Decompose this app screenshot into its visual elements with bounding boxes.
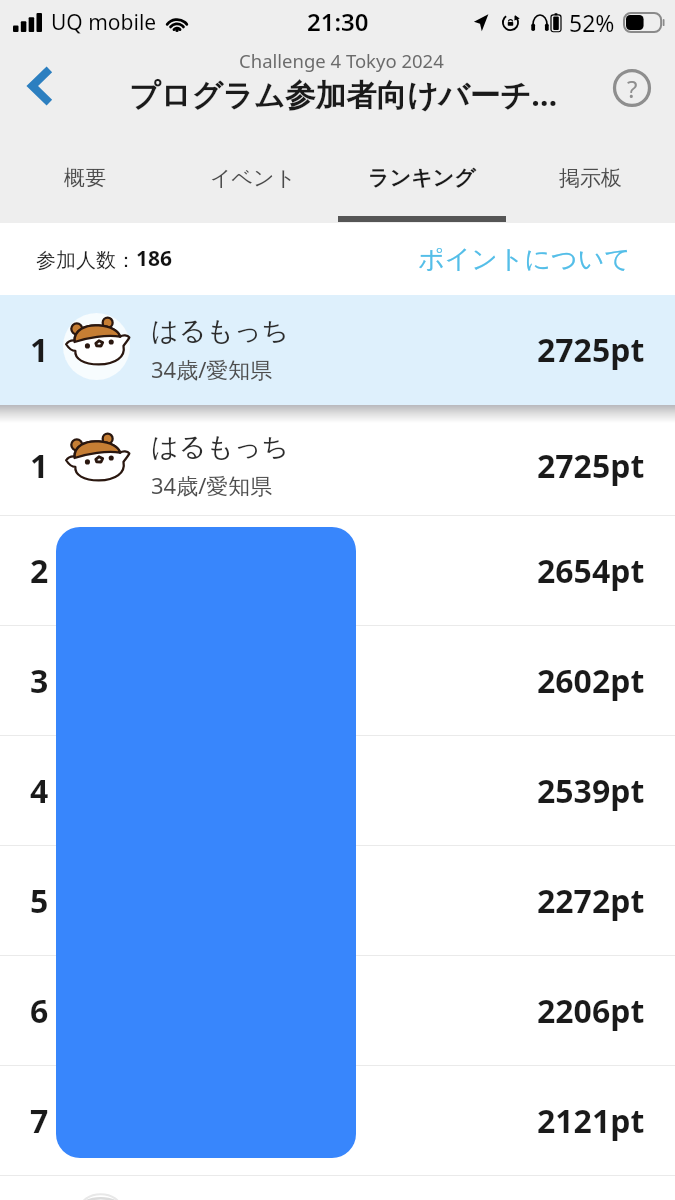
staticText: 2272pt: [537, 879, 645, 923]
staticText: 2602pt: [537, 659, 645, 703]
staticText: プログラム参加者向けバーチ…: [129, 73, 558, 115]
button[interactable]: 3: [0, 626, 675, 735]
button[interactable]: 1: [0, 295, 675, 405]
button[interactable]: 1: [0, 423, 675, 515]
button[interactable]: 4: [0, 736, 675, 845]
staticText: 掲示板: [559, 165, 622, 191]
staticText: 21:30: [307, 5, 369, 38]
button[interactable]: ポイントについて: [418, 243, 631, 276]
staticText: 2539pt: [537, 769, 645, 813]
button[interactable]: 掲示板: [506, 145, 674, 223]
staticText: 7: [30, 1099, 49, 1143]
staticText: Challenge 4 Tokyo 2024: [239, 48, 444, 73]
staticText: 34歳/愛知県: [151, 470, 273, 500]
staticText: 参加人数：: [36, 248, 136, 273]
button[interactable]: イベント: [169, 145, 337, 223]
staticText: ポイントについて: [418, 243, 631, 276]
staticText: 186: [136, 244, 173, 273]
staticText: 2121pt: [537, 1099, 645, 1143]
staticText: 52%: [569, 7, 615, 38]
button[interactable]: 6: [0, 956, 675, 1065]
button[interactable]: 5: [0, 846, 675, 955]
staticText: 34歳/愛知県: [151, 354, 273, 384]
button[interactable]: 7: [0, 1066, 675, 1175]
staticText: UQ mobile: [51, 8, 157, 37]
button[interactable]: 2: [0, 516, 675, 625]
staticText: はるもっち: [151, 430, 290, 464]
button[interactable]: Panel: [56, 527, 356, 1158]
button[interactable]: Back: [0, 45, 76, 145]
staticText: ランキング: [368, 165, 476, 191]
staticText: ?: [627, 72, 638, 105]
staticText: はるもっち: [151, 314, 290, 348]
staticText: 6: [30, 989, 49, 1033]
staticText: 2206pt: [537, 989, 645, 1033]
staticText: 3: [30, 659, 49, 703]
staticText: 概要: [64, 165, 106, 191]
button[interactable]: Help: [591, 45, 675, 145]
staticText: 5: [30, 879, 49, 923]
staticText: 4: [30, 769, 49, 813]
button[interactable]: ランキング: [338, 145, 506, 223]
button[interactable]: 概要: [1, 145, 169, 223]
staticText: 2: [30, 549, 49, 593]
staticText: イベント: [210, 165, 296, 191]
staticText: 2725pt: [537, 444, 645, 488]
staticText: 1: [30, 328, 49, 372]
staticText: 2725pt: [537, 328, 645, 372]
staticText: 1: [30, 444, 49, 488]
staticText: 2654pt: [537, 549, 645, 593]
